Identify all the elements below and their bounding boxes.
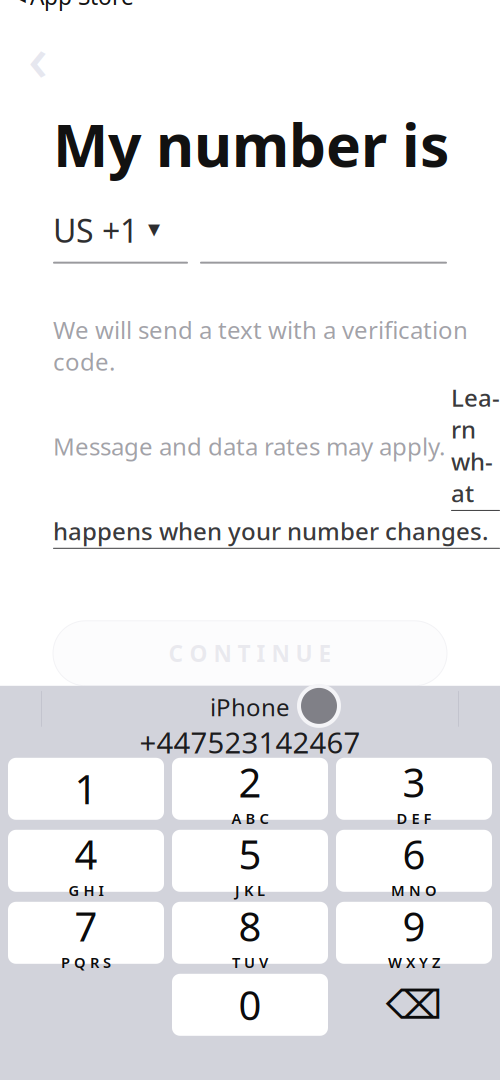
staticText: App Store bbox=[30, 0, 134, 11]
staticText: We will send a text with a verification … bbox=[53, 314, 468, 377]
staticText: ⌫ bbox=[385, 982, 442, 1027]
button[interactable]: iPhone bbox=[139, 691, 360, 762]
staticText: G H I bbox=[68, 881, 103, 900]
button[interactable]: 1 bbox=[8, 758, 164, 820]
staticText: 6 bbox=[402, 827, 425, 881]
staticText: Learn what bbox=[451, 381, 500, 509]
button[interactable]: Back bbox=[16, 35, 60, 79]
staticText: T U V bbox=[232, 953, 268, 972]
button[interactable]: 7 bbox=[8, 902, 164, 964]
staticText: 9 bbox=[402, 899, 425, 953]
staticText: W X Y Z bbox=[388, 953, 440, 972]
button[interactable]: C O N T I N U E bbox=[53, 621, 447, 686]
button[interactable]: 5 bbox=[172, 830, 328, 892]
staticText: 7 bbox=[74, 899, 97, 953]
button[interactable]: 3 bbox=[336, 758, 492, 820]
staticText: 2 bbox=[238, 755, 261, 809]
button[interactable]: 8 bbox=[172, 902, 328, 964]
button[interactable]: 0 bbox=[172, 974, 328, 1036]
staticText: Message and data rates may apply. bbox=[53, 430, 451, 462]
staticText: C O N T I N U E bbox=[168, 638, 331, 668]
staticText: +447523142467 bbox=[139, 723, 360, 762]
staticText: 4 bbox=[74, 827, 97, 881]
button[interactable]: ◀ bbox=[0, 0, 134, 13]
staticText: ◀ bbox=[14, 0, 25, 5]
staticText: P Q R S bbox=[61, 953, 111, 972]
button[interactable]: 6 bbox=[336, 830, 492, 892]
staticText: ‹ bbox=[28, 17, 48, 98]
staticText: ▾ bbox=[148, 215, 160, 242]
button[interactable]: 4 bbox=[8, 830, 164, 892]
staticText: US +1 bbox=[53, 209, 138, 252]
button[interactable] bbox=[200, 209, 447, 264]
button[interactable]: 9 bbox=[336, 902, 492, 964]
staticText: iPhone bbox=[210, 691, 290, 723]
button[interactable]: happens when your number changes. bbox=[53, 515, 500, 549]
staticText: 8 bbox=[238, 899, 261, 953]
button[interactable]: Learn what bbox=[451, 381, 500, 511]
staticText: A B C bbox=[231, 809, 268, 828]
staticText: 1 bbox=[74, 762, 97, 815]
staticText: happens when your number changes. bbox=[53, 515, 489, 547]
staticText: J K L bbox=[235, 881, 265, 900]
button[interactable]: Delete bbox=[336, 974, 492, 1036]
button[interactable]: 2 bbox=[172, 758, 328, 820]
button[interactable]: US +1 bbox=[53, 209, 188, 264]
staticText: 5 bbox=[238, 827, 261, 881]
staticText: M N O bbox=[391, 881, 437, 900]
staticText: 0 bbox=[238, 978, 261, 1031]
staticText: My number is bbox=[53, 105, 449, 183]
staticText: 3 bbox=[402, 755, 425, 809]
staticText: D E F bbox=[396, 809, 431, 828]
